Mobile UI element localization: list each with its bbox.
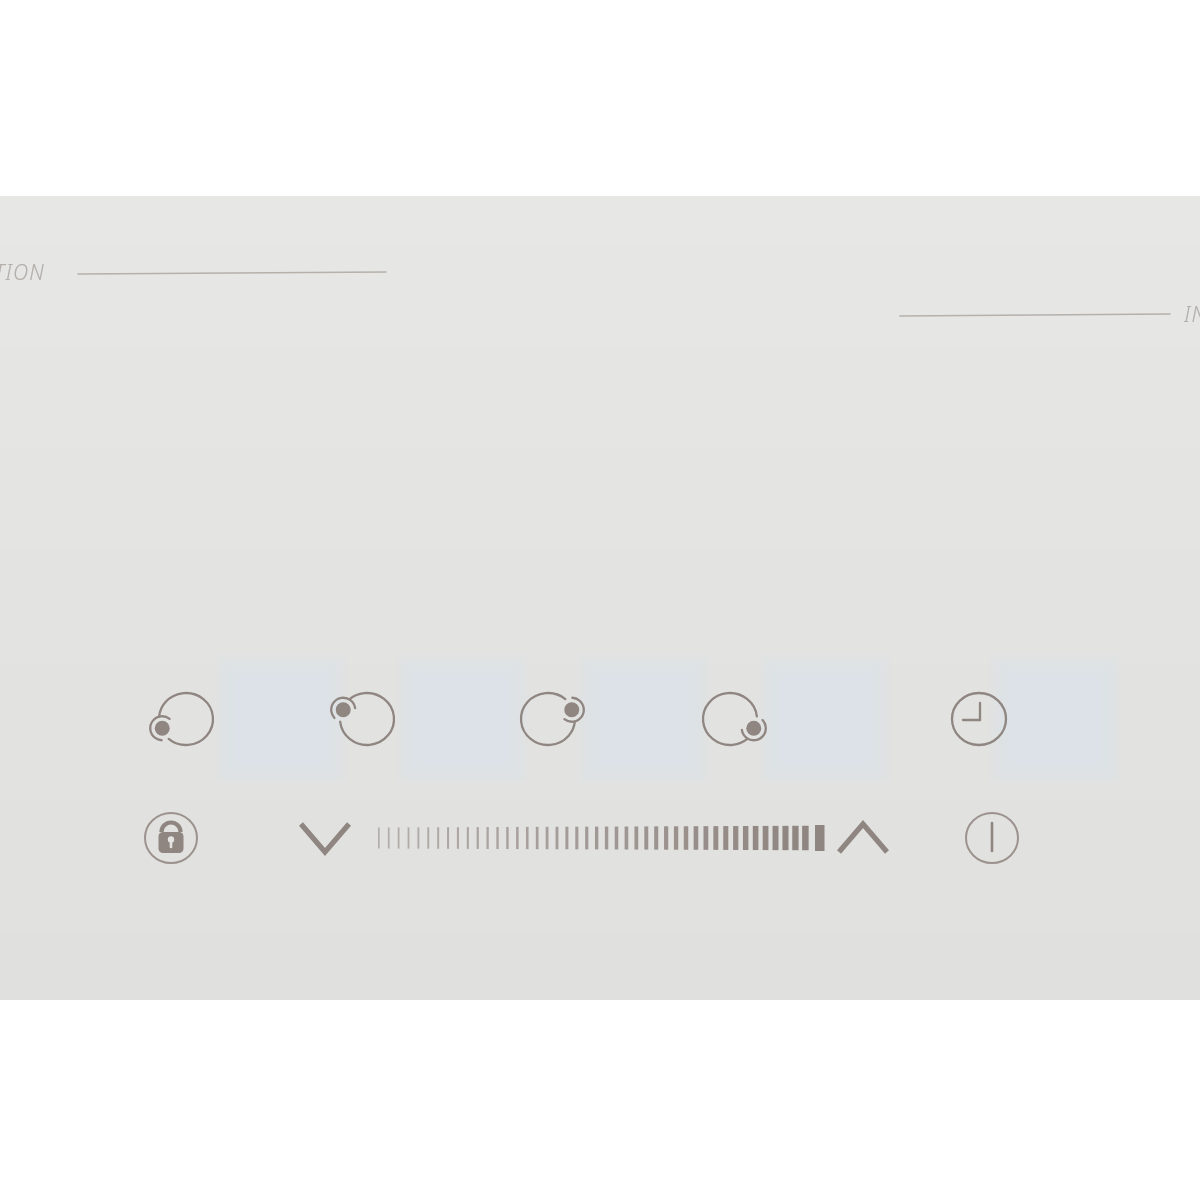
button[interactable]: Decrease power level [288,802,362,874]
button[interactable]: Timer [939,679,1019,759]
staticText: TION [0,258,46,287]
button[interactable]: Cooking zone rear left [327,679,407,759]
button[interactable]: Increase power level [826,802,900,874]
button[interactable]: Cooking zone front right [690,679,770,759]
button[interactable]: Power level slider [372,806,824,870]
button[interactable]: Child lock [131,798,211,878]
staticText: IN [1184,300,1200,329]
button[interactable]: Power on off [952,798,1032,878]
button[interactable]: Cooking zone front left [146,679,226,759]
button[interactable]: Cooking zone rear right [508,679,588,759]
